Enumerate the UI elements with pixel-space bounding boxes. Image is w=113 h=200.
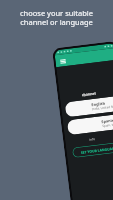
staticText: English	[91, 101, 105, 107]
staticText: SET YOUR LANGUAGE	[80, 145, 113, 155]
button[interactable]: SET YOUR LANGUAGE	[72, 142, 113, 158]
staticText: India, United States	[91, 104, 113, 111]
button[interactable]: English	[64, 95, 113, 117]
button[interactable]: Spanish	[67, 113, 113, 135]
button[interactable]: Menu	[59, 57, 67, 65]
staticText: Spain, Mexico	[101, 122, 113, 128]
staticText: channel	[81, 91, 96, 97]
staticText: Spanish	[101, 117, 113, 124]
staticText: choose your suitable channel or language	[7, 8, 106, 28]
staticText: info	[89, 137, 95, 142]
